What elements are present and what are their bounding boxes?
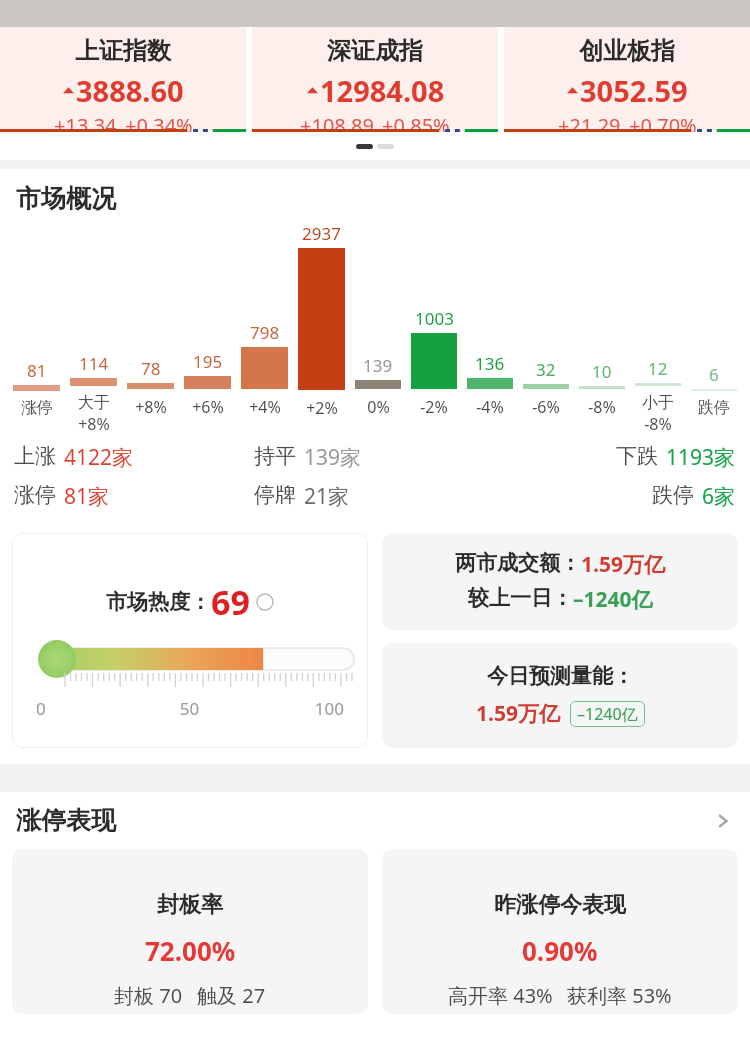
staticText: 69 (211, 579, 250, 625)
staticText: 市场热度： (106, 589, 211, 615)
staticText: 市场概况 (16, 183, 116, 214)
staticText: 12984.08 (320, 71, 445, 110)
staticText: 78 (141, 357, 161, 380)
staticText: 0.90% (522, 933, 598, 968)
staticText: 0 (36, 697, 138, 720)
staticText: +21.29 (558, 112, 621, 132)
staticText: -8% (588, 396, 616, 418)
staticText: 涨停 (21, 398, 53, 418)
staticText: +108.89 (300, 112, 374, 132)
staticText: 72.00% (145, 933, 236, 968)
staticText: 停牌 (254, 482, 296, 508)
staticText: –1240亿 (573, 585, 653, 614)
button[interactable]: 上证指数 (0, 27, 246, 132)
staticText: -6% (532, 396, 560, 418)
button[interactable]: 创业板指 (504, 27, 750, 132)
button[interactable]: 涨停表现 (0, 792, 750, 849)
staticText: 1.59万亿 (476, 699, 560, 728)
button[interactable]: 深证成指 (252, 27, 498, 132)
staticText: 32 (536, 358, 556, 381)
staticText: +13.34 (54, 112, 117, 132)
staticText: 0% (367, 396, 390, 418)
staticText: +6% (192, 396, 224, 418)
staticText: +0.34% (125, 112, 193, 132)
staticText: 两市成交额： (455, 550, 581, 576)
staticText: 获利率 53% (567, 982, 672, 1009)
staticText: 跌停 (652, 482, 694, 508)
staticText: 封板 70 (114, 982, 183, 1009)
staticText: 3888.60 (76, 71, 184, 110)
staticText: 触及 27 (197, 982, 266, 1009)
staticText: 81家 (64, 482, 110, 511)
staticText: 100 (241, 697, 344, 720)
staticText: 涨停 (14, 482, 56, 508)
staticText: 封板率 (157, 891, 223, 919)
staticText: 81 (27, 359, 47, 382)
staticText: 4122家 (64, 443, 134, 472)
staticText: +4% (249, 396, 281, 418)
staticText: 1.59万亿 (581, 550, 665, 579)
staticText: 高开率 43% (448, 982, 553, 1009)
staticText: 6 (709, 363, 719, 386)
staticText: 上涨 (14, 443, 56, 469)
staticText: +0.70% (629, 112, 697, 132)
staticText: 大于 (78, 393, 110, 413)
staticText: 50 (138, 697, 241, 720)
staticText: 2937 (302, 222, 341, 245)
staticText: -4% (476, 396, 504, 418)
staticText: 136 (475, 352, 505, 375)
staticText: 21家 (304, 482, 350, 511)
other: More (712, 810, 734, 832)
button[interactable]: 封板率 (12, 849, 368, 1014)
staticText: 深证成指 (327, 36, 423, 66)
staticText: 昨涨停今表现 (494, 891, 626, 919)
staticText: 较上一日： (468, 585, 573, 611)
staticText: 114 (79, 352, 109, 375)
staticText: –1240亿 (577, 703, 638, 725)
staticText: 跌停 (698, 398, 730, 418)
staticText: 持平 (254, 443, 296, 469)
button[interactable]: 昨涨停今表现 (382, 849, 738, 1014)
staticText: +0.85% (382, 112, 450, 132)
staticText: -8% (644, 413, 672, 435)
staticText: 小于 (642, 393, 674, 413)
staticText: 创业板指 (579, 36, 675, 66)
staticText: +2% (306, 397, 338, 419)
staticText: +8% (135, 396, 167, 418)
staticText: 3052.59 (580, 71, 688, 110)
staticText: 139家 (304, 443, 362, 472)
staticText: -2% (420, 396, 448, 418)
staticText: 10 (592, 360, 612, 383)
staticText: 12 (648, 357, 668, 380)
other: Help (256, 593, 274, 611)
button[interactable]: 今日预测量能： (382, 643, 738, 748)
staticText: 798 (250, 321, 280, 344)
button[interactable]: 两市成交额： (382, 533, 738, 630)
staticText: 139 (363, 354, 393, 377)
staticText: 今日预测量能： (487, 663, 634, 689)
button[interactable]: 市场热度： (12, 533, 368, 748)
staticText: 1193家 (666, 443, 736, 472)
staticText: 6家 (702, 482, 736, 511)
staticText: +8% (78, 413, 110, 435)
staticText: 涨停表现 (16, 805, 712, 836)
staticText: 1003 (415, 307, 454, 330)
staticText: 下跌 (616, 443, 658, 469)
staticText: 195 (193, 350, 223, 373)
staticText: 上证指数 (75, 36, 171, 66)
